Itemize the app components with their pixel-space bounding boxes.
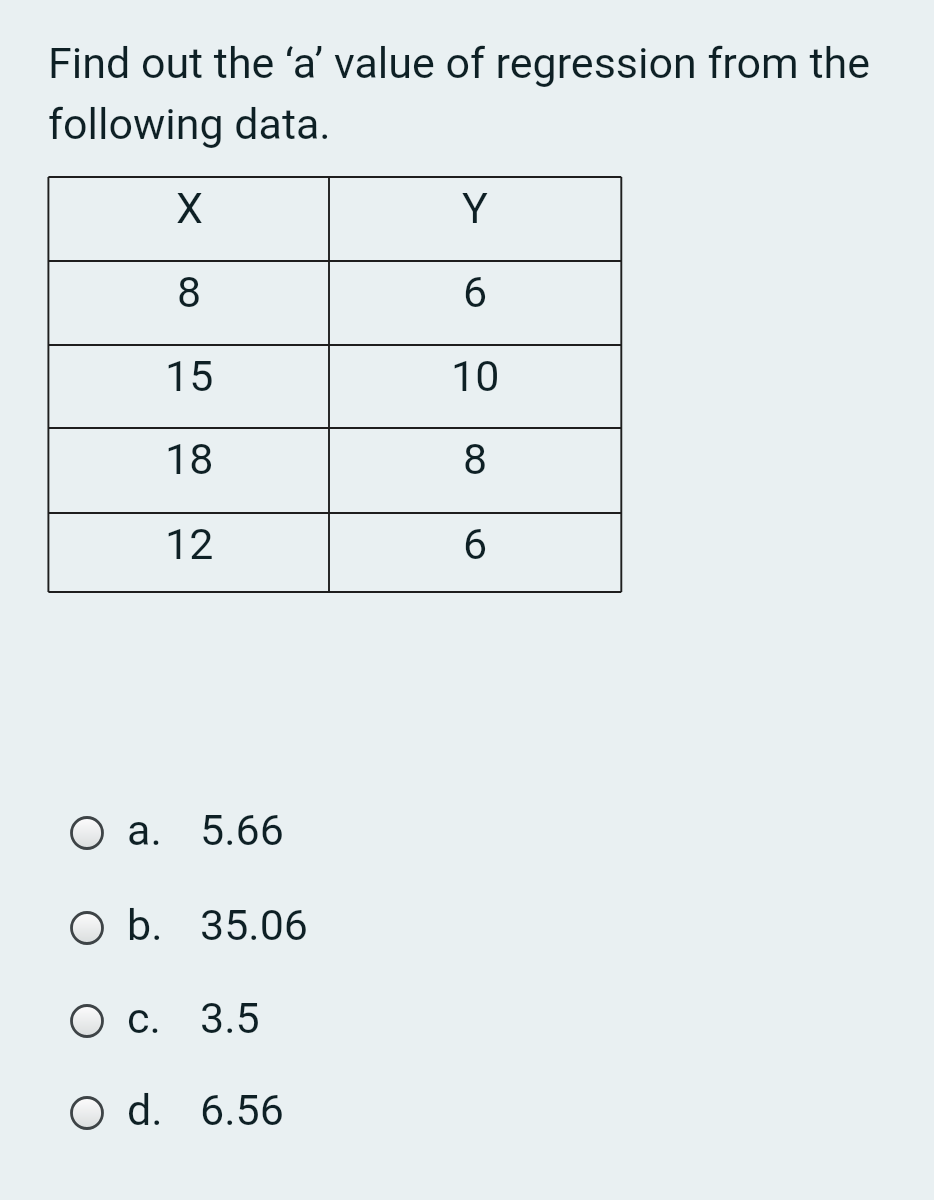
staticText: c.	[127, 993, 161, 1043]
staticText: 10	[451, 351, 500, 401]
staticText: 5.66	[200, 805, 284, 855]
button[interactable]: Option d. 6.56	[0, 1082, 934, 1144]
staticText: 3.5	[200, 993, 260, 1043]
staticText: 8	[177, 267, 202, 317]
staticText: X	[176, 183, 203, 233]
button[interactable]: Option b. 35.06	[0, 897, 934, 959]
staticText: 15	[165, 351, 214, 401]
staticText: 6	[463, 519, 488, 569]
staticText: 18	[165, 434, 214, 484]
staticText: b.	[127, 900, 163, 950]
staticText: Find out the ‘a’ value of regression fro…	[48, 38, 884, 150]
staticText: Y	[462, 183, 488, 233]
staticText: 6.56	[200, 1085, 284, 1135]
staticText: 35.06	[200, 900, 309, 950]
button[interactable]: Option c. 3.5	[0, 990, 934, 1052]
button[interactable]: Option a. 5.66	[0, 802, 934, 864]
staticText: d.	[127, 1085, 163, 1135]
staticText: 8	[463, 434, 488, 484]
staticText: a.	[127, 805, 162, 855]
staticText: 6	[463, 267, 488, 317]
staticText: 12	[165, 519, 214, 569]
